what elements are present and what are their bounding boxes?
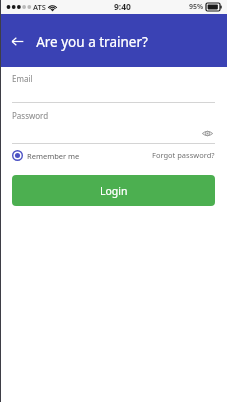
button[interactable]: Email xyxy=(12,67,215,102)
button[interactable]: Remember me xyxy=(12,150,80,161)
button[interactable]: Password xyxy=(12,103,215,143)
staticText: Forgot password? xyxy=(152,150,215,160)
staticText: Are you a trainer? xyxy=(0,33,184,51)
staticText: Login xyxy=(100,184,128,198)
button[interactable]: Forgot password? xyxy=(152,150,215,160)
staticText: 95% xyxy=(189,2,204,12)
staticText: ATS xyxy=(33,2,46,12)
button[interactable]: Login xyxy=(12,175,215,206)
button[interactable]: Show password xyxy=(199,125,215,141)
staticText: Email xyxy=(12,73,33,84)
button[interactable]: Back xyxy=(5,29,30,54)
staticText: Remember me xyxy=(27,151,80,161)
staticText: 9:40 xyxy=(114,1,131,13)
staticText: Password xyxy=(12,110,49,121)
